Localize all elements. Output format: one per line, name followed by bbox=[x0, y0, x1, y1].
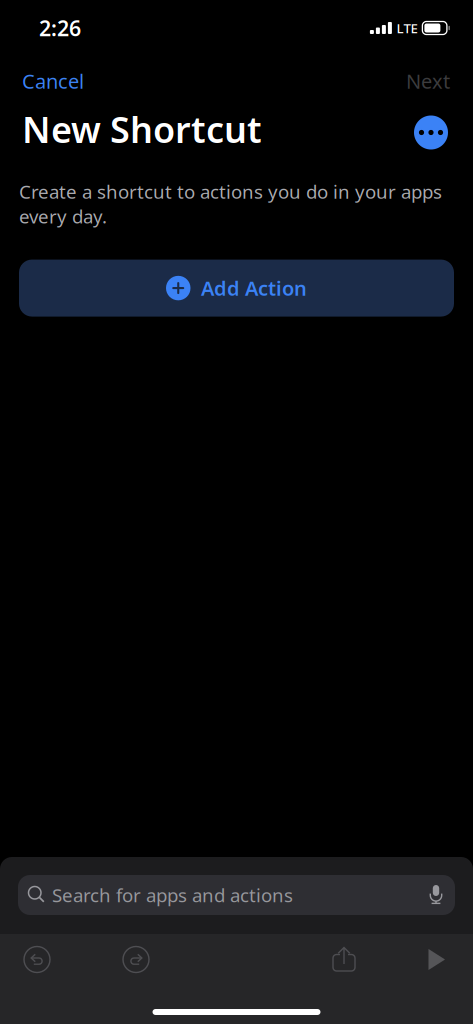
button[interactable]: More options bbox=[414, 115, 448, 149]
staticText: New Shortcut bbox=[22, 105, 262, 153]
button[interactable]: Cancel bbox=[22, 59, 84, 103]
staticText: Next bbox=[406, 68, 450, 94]
staticText: LTE bbox=[396, 19, 417, 37]
button[interactable]: Add Action bbox=[19, 260, 454, 317]
button[interactable]: Redo bbox=[114, 934, 158, 985]
button[interactable]: Next bbox=[406, 59, 450, 103]
staticText: Search for apps and actions bbox=[52, 883, 293, 907]
button[interactable]: Share bbox=[322, 934, 366, 985]
staticText: Create a shortcut to actions you do in y… bbox=[19, 179, 442, 229]
button[interactable]: Undo bbox=[15, 934, 59, 985]
staticText: Cancel bbox=[22, 68, 84, 94]
staticText: 2:26 bbox=[39, 14, 81, 42]
button[interactable]: Run shortcut bbox=[415, 934, 459, 985]
staticText: Add Action bbox=[201, 275, 307, 301]
